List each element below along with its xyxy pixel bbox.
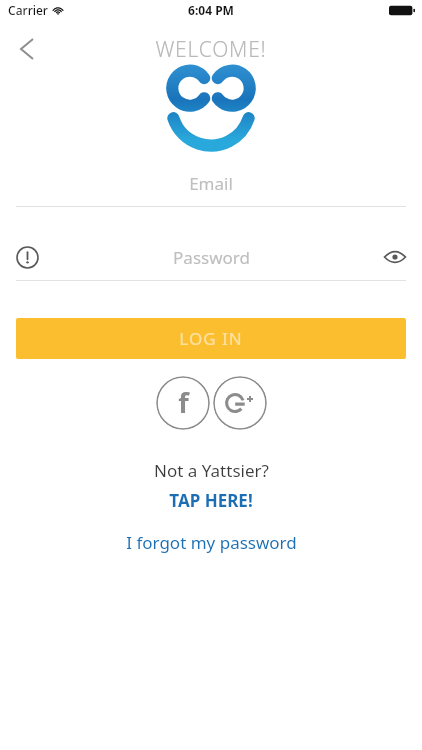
staticText: Email [189,172,233,195]
staticText: TAP HERE! [169,489,253,512]
staticText: LOG IN [179,327,243,350]
staticText: Not a Yattsier? [154,459,269,482]
button[interactable]: Show password [378,240,412,274]
button[interactable]: Sign in with Google [213,376,267,430]
button[interactable]: I forgot my password [114,527,309,558]
staticText: WELCOME! [155,35,267,64]
staticText: Password [173,246,250,269]
staticText: 6:04 PM [188,2,234,18]
button[interactable]: LOG IN [16,318,406,359]
button[interactable]: Password error [10,240,44,274]
staticText: I forgot my password [126,531,297,554]
button[interactable]: Sign in with Facebook [156,376,210,430]
button[interactable]: Back [6,28,48,70]
staticText: f [178,384,189,421]
staticText: Carrier [8,2,48,18]
button[interactable]: Email [0,160,422,206]
button[interactable]: Password [111,234,311,280]
button[interactable]: TAP HERE! [159,487,263,514]
